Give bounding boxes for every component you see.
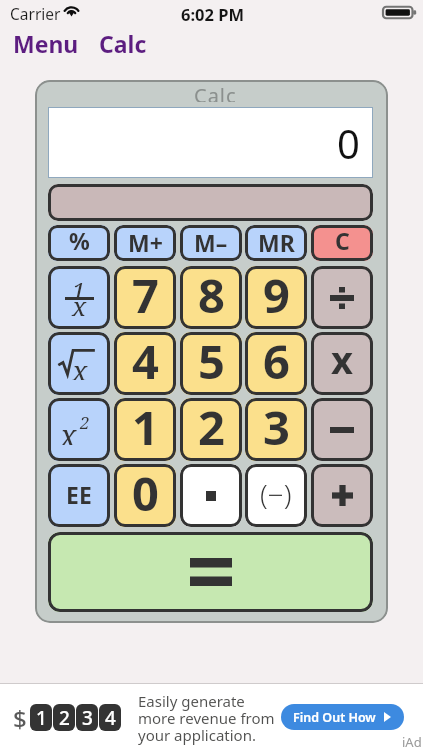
staticText: x [72,351,88,380]
staticText: Calc [99,28,147,59]
button[interactable]: Decimal point [180,464,242,527]
button[interactable]: C [311,225,373,261]
button[interactable]: Calc [99,28,147,59]
staticText: x [60,415,77,445]
staticText: 0 [337,116,360,170]
staticText: 7 [132,266,159,326]
staticText: Find Out How [293,709,376,726]
staticText: 2 [59,705,70,731]
button[interactable]: 7 [114,266,176,329]
button[interactable]: 2 [180,398,242,461]
button[interactable]: 9 [245,266,307,329]
button[interactable]: 0 [114,464,176,527]
button[interactable]: EE [48,464,110,527]
button[interactable]: 1 [114,398,176,461]
staticText: 3 [263,398,290,458]
button[interactable]: 3 [245,398,307,461]
button[interactable]: MR [245,225,307,261]
staticText: 9 [263,266,290,326]
button[interactable]: Plus [311,464,373,527]
staticText: MR [258,227,295,258]
button[interactable]: Minus [311,398,373,461]
staticText: Menu [13,28,79,59]
staticText: % [69,225,90,256]
staticText: M– [194,227,228,258]
button[interactable]: M– [180,225,242,261]
staticText: 6:02 PM [181,3,245,25]
staticText: 1 [72,274,86,307]
staticText: 2 [80,411,90,434]
staticText: M+ [128,227,163,258]
button[interactable]: Memory display [48,184,373,221]
button[interactable]: Multiply [311,332,373,395]
staticText: 4 [105,705,116,731]
staticText: 5 [198,332,225,392]
button[interactable]: 8 [180,266,242,329]
button[interactable]: Find Out How [281,704,404,730]
button[interactable]: Divide [311,266,373,329]
button[interactable]: 4 [114,332,176,395]
staticText: Calc [194,82,237,102]
button[interactable]: x squared [48,398,110,461]
staticText: iAd [402,733,422,750]
staticText: EE [66,479,92,510]
staticText: 6 [263,332,290,392]
staticText: 3 [82,705,93,731]
staticText: x [331,333,353,385]
staticText: $ [13,702,27,735]
staticText: Easily generate more revenue from your a… [138,691,275,746]
staticText: C [335,225,350,256]
staticText: 0 [132,464,159,524]
button[interactable]: M+ [114,225,176,261]
button[interactable]: Square root [48,332,110,395]
staticText: 1 [132,398,159,458]
staticText: x [72,288,87,323]
staticText: 8 [198,266,225,326]
staticText: 4 [132,332,159,392]
staticText: 2 [198,398,225,458]
staticText: Carrier [10,3,61,24]
button[interactable]: Menu [13,28,79,59]
button[interactable]: Equals [48,532,373,612]
staticText: (−) [260,475,292,513]
button[interactable]: Negate [245,464,307,527]
button[interactable]: 6 [245,332,307,395]
button[interactable]: One over x [48,266,110,329]
button[interactable]: 5 [180,332,242,395]
staticText: 1 [36,705,47,731]
button[interactable]: % [48,225,110,261]
